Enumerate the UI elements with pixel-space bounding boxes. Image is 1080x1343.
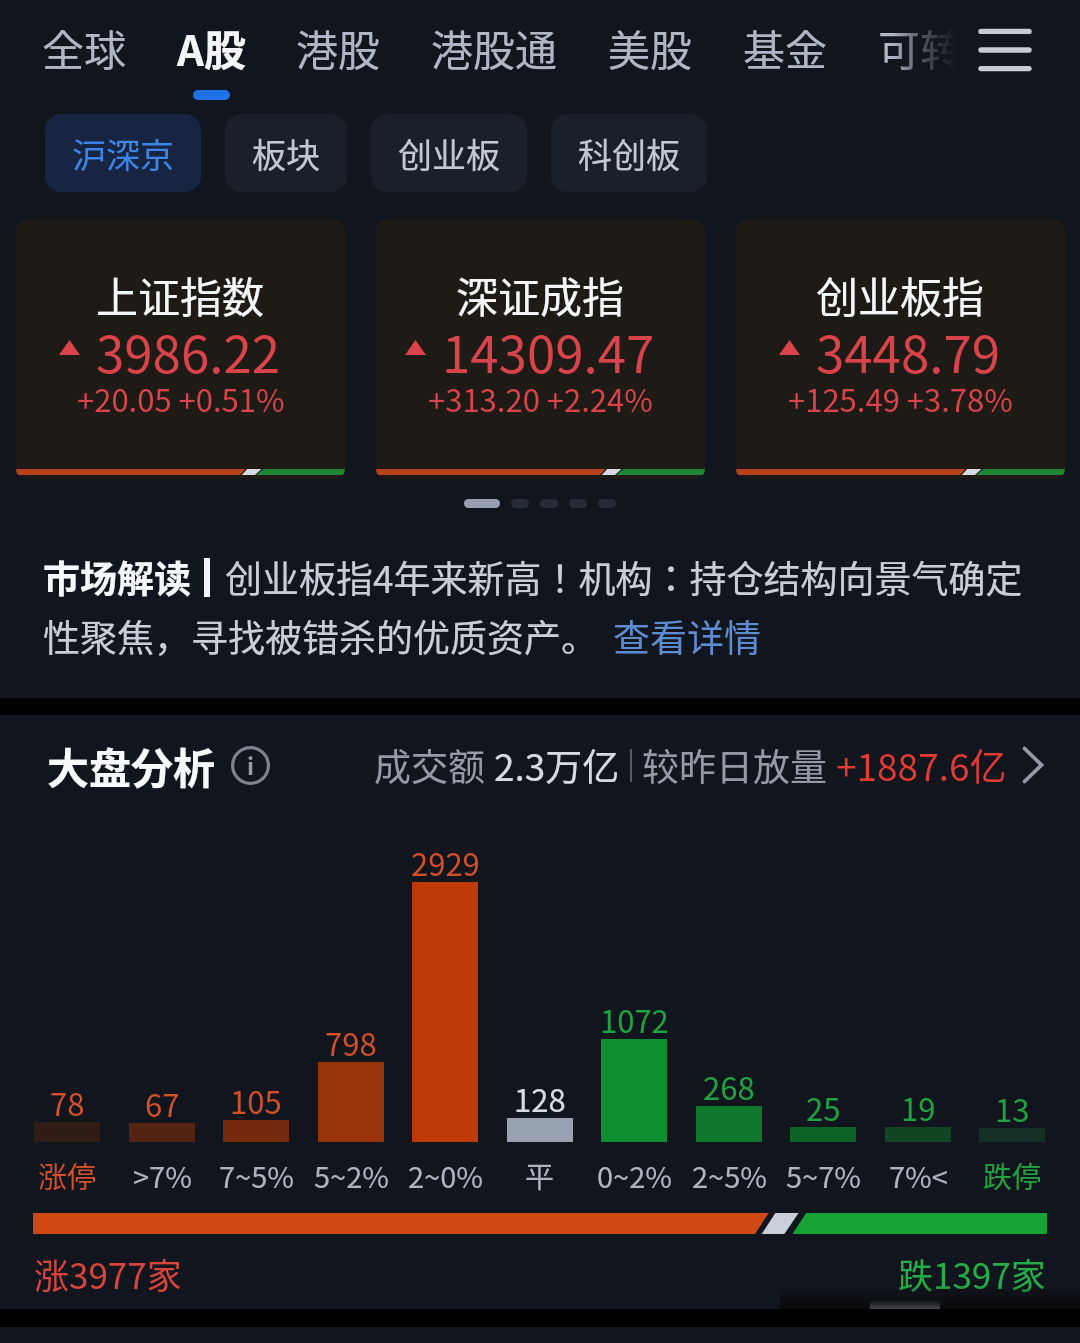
button[interactable]: 沪深京	[45, 114, 201, 192]
staticText: 105	[230, 1078, 282, 1123]
button[interactable]: 港股	[296, 0, 381, 100]
staticText: >7%	[133, 1154, 192, 1196]
staticText: 67	[145, 1081, 180, 1126]
staticText: 深证成指	[456, 264, 625, 325]
staticText: A股	[177, 17, 246, 78]
staticText: +1887.6亿	[836, 738, 1007, 792]
staticText: 创业板指	[816, 264, 985, 325]
staticText: 2929	[411, 840, 480, 885]
staticText: 798	[325, 1020, 377, 1065]
staticText: 较昨日放量	[642, 738, 836, 792]
button[interactable]: 查看详情	[613, 609, 761, 663]
staticText: 查看详情	[613, 609, 761, 663]
staticText: 7%<	[889, 1154, 948, 1196]
staticText: 上证指数	[96, 264, 265, 325]
button[interactable]: 美股	[608, 0, 693, 100]
staticText: 跌停	[983, 1154, 1042, 1196]
staticText: 3448.79	[816, 314, 1001, 388]
staticText: 268	[703, 1064, 755, 1109]
button[interactable]: 基金	[743, 0, 828, 100]
other: More	[1013, 745, 1053, 785]
button[interactable]: 板块	[225, 114, 347, 192]
staticText: 涨3977家	[34, 1248, 182, 1299]
staticText: 0~2%	[597, 1154, 672, 1196]
staticText: 19	[901, 1085, 936, 1130]
staticText: 78	[50, 1080, 85, 1125]
button[interactable]: Market breadth chart	[0, 830, 1080, 1200]
staticText: 性聚焦，寻找被错杀的优质资产。	[43, 609, 598, 663]
button[interactable]: 深证成指	[376, 220, 705, 479]
button[interactable]: 创业板	[371, 114, 527, 192]
staticText: +125.49 +3.78%	[788, 376, 1013, 421]
staticText: 大盘分析	[47, 735, 216, 796]
staticText: 基金	[743, 17, 828, 78]
staticText: 平	[525, 1154, 555, 1196]
staticText: 可转债	[878, 17, 1005, 78]
staticText: 1072	[600, 997, 669, 1042]
staticText: 跌1397家	[898, 1248, 1046, 1299]
staticText: +20.05 +0.51%	[77, 376, 285, 421]
staticText: 128	[514, 1076, 566, 1121]
staticText: 5~7%	[786, 1154, 861, 1196]
staticText: 5~2%	[314, 1154, 389, 1196]
staticText: 创业板	[398, 129, 500, 178]
staticText: 港股	[296, 17, 381, 78]
staticText: 3986.22	[96, 314, 281, 388]
button[interactable]: 港股通	[431, 0, 558, 100]
button[interactable]: Menu	[960, 10, 1050, 90]
staticText: 成交额	[374, 738, 494, 792]
staticText: 市场解读	[43, 550, 191, 604]
staticText: 2~0%	[408, 1154, 483, 1196]
staticText: i	[247, 748, 254, 781]
staticText: 25	[806, 1085, 841, 1130]
staticText: 全球	[42, 17, 127, 78]
button[interactable]: 科创板	[551, 114, 707, 192]
staticText: 2~5%	[692, 1154, 767, 1196]
button[interactable]: 可转债	[878, 0, 1005, 100]
staticText: 涨停	[38, 1154, 97, 1196]
button[interactable]: 大盘分析	[47, 730, 1053, 800]
staticText: 美股	[608, 17, 693, 78]
staticText: 创业板指4年来新高！机构：持仓结构向景气确定	[225, 550, 1023, 604]
button[interactable]: 全球	[42, 0, 127, 100]
staticText: 14309.47	[442, 314, 655, 388]
staticText: 港股通	[431, 17, 558, 78]
staticText: 沪深京	[72, 129, 174, 178]
staticText: 板块	[252, 129, 320, 178]
button[interactable]: 上证指数	[16, 220, 345, 479]
button[interactable]: A股	[177, 0, 246, 100]
button[interactable]: 创业板指	[736, 220, 1065, 479]
staticText: 2.3万亿	[494, 738, 620, 792]
staticText: 科创板	[578, 129, 680, 178]
staticText: 13	[995, 1086, 1030, 1131]
staticText: 7~5%	[219, 1154, 294, 1196]
staticText: +313.20 +2.24%	[428, 376, 653, 421]
